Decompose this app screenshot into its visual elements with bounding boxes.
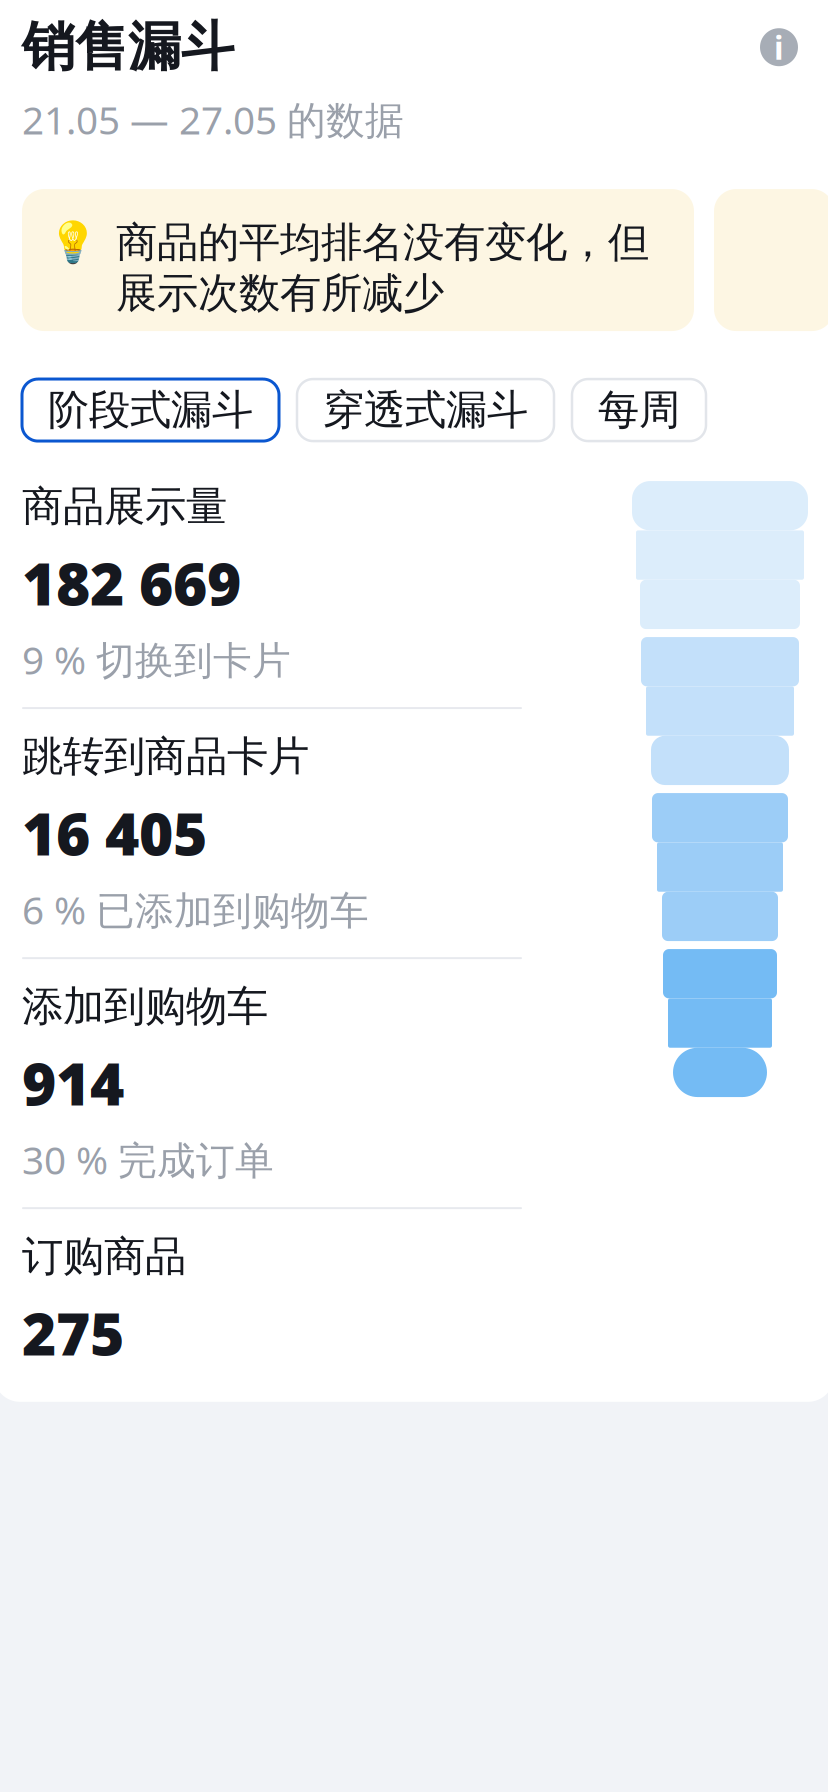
staticText: 275 — [22, 1294, 124, 1372]
staticText: 跳转到商品卡片 — [22, 731, 309, 782]
staticText: 每周 — [598, 385, 680, 435]
staticText: 6 % 已添加到购物车 — [22, 884, 369, 935]
staticText: 商品的平均排名没有变化，但展示次数有所减少 — [116, 217, 649, 319]
staticText: 阶段式漏斗 — [48, 385, 253, 435]
staticText: i — [774, 26, 784, 68]
staticText: 添加到购物车 — [22, 981, 268, 1032]
staticText: 16 405 — [22, 794, 207, 872]
staticText: 订购商品 — [22, 1231, 186, 1282]
staticText: 商品展示量 — [22, 481, 227, 532]
button[interactable]: 每周 — [572, 379, 706, 441]
staticText: 穿透式漏斗 — [323, 385, 528, 435]
staticText: 30 % 完成订单 — [22, 1134, 274, 1185]
staticText: 销售漏斗 — [22, 14, 234, 80]
button[interactable]: Information — [752, 20, 806, 74]
staticText: 182 669 — [22, 544, 241, 622]
button[interactable]: 阶段式漏斗 — [22, 379, 279, 441]
staticText: 914 — [22, 1044, 124, 1122]
staticText: 21.05 — 27.05 的数据 — [22, 94, 404, 145]
staticText: 💡 — [48, 219, 98, 265]
button[interactable]: 穿透式漏斗 — [297, 379, 554, 441]
staticText: 9 % 切换到卡片 — [22, 634, 291, 685]
button[interactable]: 💡 — [22, 189, 694, 331]
